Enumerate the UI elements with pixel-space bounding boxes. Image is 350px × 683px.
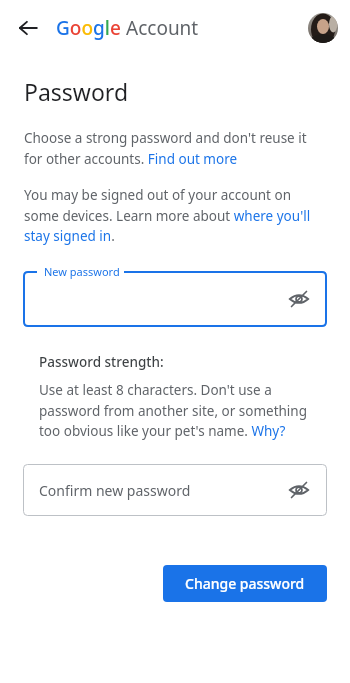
button[interactable]: You may be signed out of your account on… — [24, 186, 328, 245]
button[interactable]: Confirm new password — [23, 464, 327, 516]
staticText: Confirm new password — [39, 481, 191, 500]
button[interactable]: Choose a strong password and don't reuse… — [24, 129, 328, 168]
button[interactable]: Change password — [163, 565, 327, 602]
button[interactable]: Google Account profile — [308, 13, 338, 43]
staticText: Password — [24, 76, 129, 107]
button[interactable]: New password — [23, 271, 327, 327]
staticText: Change password — [185, 574, 305, 593]
staticText: Choose a strong password and don't reuse… — [24, 129, 328, 168]
staticText: Account — [126, 15, 199, 41]
staticText: Google — [56, 15, 121, 41]
button[interactable]: Show confirm password — [279, 470, 319, 510]
button[interactable]: Back — [8, 8, 48, 48]
button[interactable]: Use at least 8 characters. Don't use a p… — [39, 381, 328, 440]
staticText: Use at least 8 characters. Don't use a p… — [39, 381, 328, 440]
staticText: You may be signed out of your account on… — [24, 186, 328, 245]
staticText: New password — [44, 264, 120, 279]
button[interactable]: Show password — [279, 279, 319, 319]
staticText: Password strength: — [39, 353, 164, 371]
